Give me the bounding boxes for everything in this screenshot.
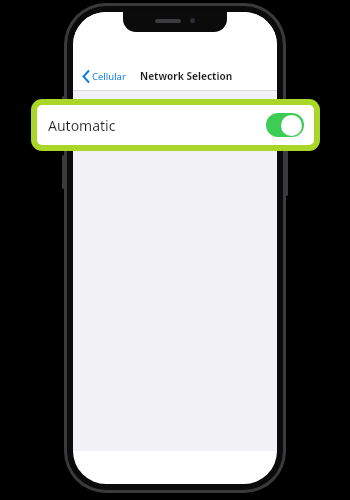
- button[interactable]: Cellular: [73, 70, 132, 83]
- button[interactable]: Automatic: [37, 105, 314, 145]
- button[interactable]: Automatic network selection on: [266, 113, 304, 137]
- staticText: Automatic: [48, 116, 116, 135]
- staticText: Network Selection: [140, 69, 233, 83]
- staticText: Cellular: [92, 70, 126, 83]
